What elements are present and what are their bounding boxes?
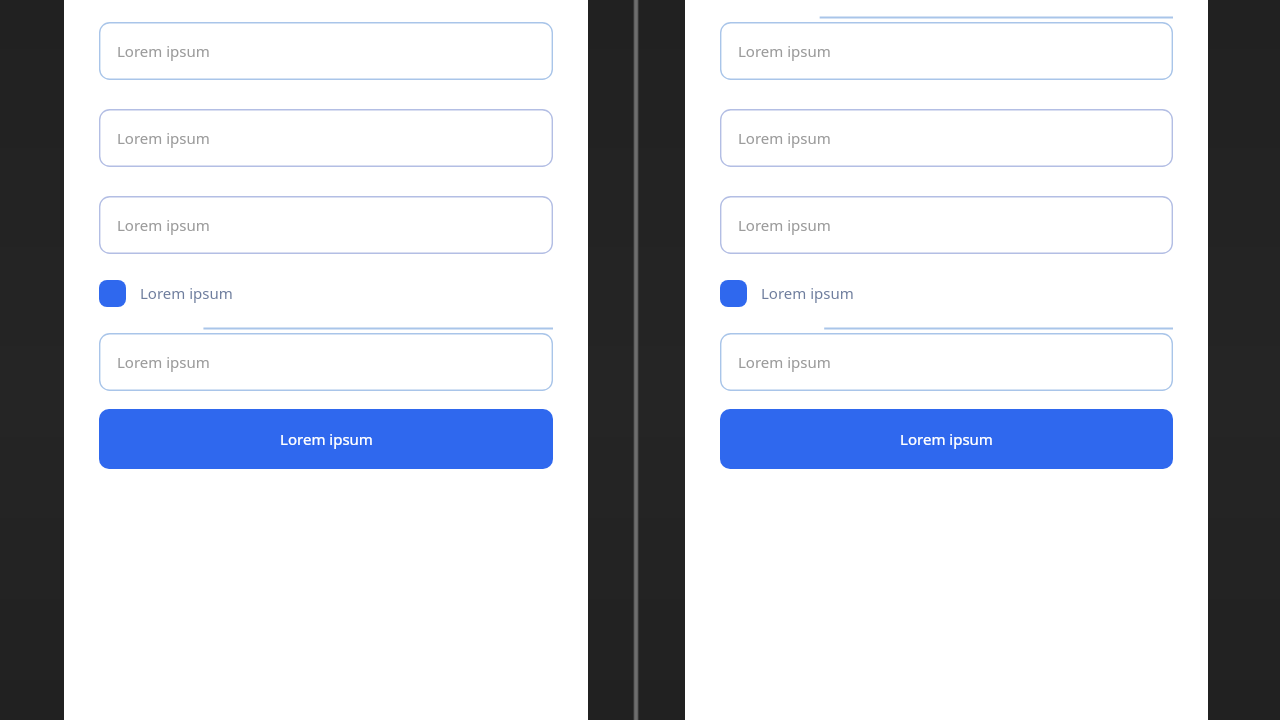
staticText: Lorem ipsum bbox=[738, 215, 831, 235]
staticText: Lorem ipsum bbox=[140, 283, 233, 303]
other: Toggle option bbox=[99, 280, 126, 307]
staticText: Lorem ipsum bbox=[738, 352, 831, 372]
staticText: Lorem ipsum bbox=[738, 41, 831, 61]
other: Toggle option bbox=[720, 280, 747, 307]
staticText: Lorem ipsum bbox=[117, 352, 210, 372]
staticText: Lorem ipsum bbox=[738, 128, 831, 148]
staticText: Lorem ipsum bbox=[117, 41, 210, 61]
button[interactable]: Toggle option bbox=[720, 270, 1173, 316]
staticText: Lorem ipsum bbox=[761, 283, 854, 303]
button[interactable]: Lorem ipsum bbox=[99, 190, 553, 254]
button[interactable]: Lorem ipsum bbox=[720, 409, 1173, 469]
button[interactable]: Lorem ipsum bbox=[720, 327, 1173, 391]
button[interactable]: Lorem ipsum bbox=[99, 103, 553, 167]
button[interactable]: Lorem ipsum bbox=[720, 16, 1173, 80]
button[interactable]: Lorem ipsum bbox=[720, 103, 1173, 167]
staticText: Lorem ipsum bbox=[280, 429, 373, 449]
staticText: Lorem ipsum bbox=[900, 429, 993, 449]
button[interactable]: Lorem ipsum bbox=[99, 409, 553, 469]
button[interactable]: Lorem ipsum bbox=[99, 327, 553, 391]
staticText: Lorem ipsum bbox=[117, 215, 210, 235]
button[interactable]: Toggle option bbox=[99, 270, 553, 316]
button[interactable]: Lorem ipsum bbox=[99, 16, 553, 80]
button[interactable]: Lorem ipsum bbox=[720, 190, 1173, 254]
staticText: Lorem ipsum bbox=[117, 128, 210, 148]
